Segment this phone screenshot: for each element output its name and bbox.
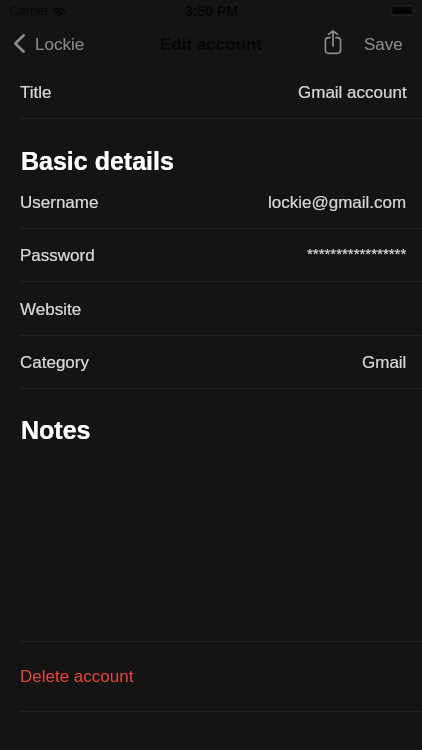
staticText: ***************** (307, 245, 407, 262)
staticText: Notes (21, 416, 91, 444)
staticText: Lockie (35, 35, 85, 54)
staticText: Edit account (160, 35, 263, 54)
button[interactable]: Website (0, 282, 422, 336)
button[interactable]: Save (348, 27, 422, 62)
staticText: Delete account (20, 667, 134, 686)
button[interactable]: Password (0, 229, 422, 282)
staticText: Password (20, 246, 95, 265)
staticText: Username (20, 193, 99, 212)
staticText: Basic details (21, 147, 174, 175)
button[interactable]: Title (0, 65, 422, 119)
button[interactable]: Username (0, 176, 422, 229)
staticText: Title (20, 83, 52, 102)
staticText: Carrier (9, 3, 49, 18)
button[interactable]: Category (0, 336, 422, 389)
button[interactable]: Lockie (0, 29, 95, 60)
staticText: Gmail account (298, 83, 407, 102)
staticText: 3:50 PM (185, 3, 238, 19)
button[interactable]: Share (318, 28, 348, 61)
button[interactable]: Delete account (0, 641, 422, 712)
staticText: Gmail (362, 353, 407, 372)
staticText: Save (364, 35, 403, 54)
staticText: Website (20, 300, 82, 319)
staticText: lockie@gmail.com (268, 193, 407, 212)
staticText: Category (20, 353, 89, 372)
